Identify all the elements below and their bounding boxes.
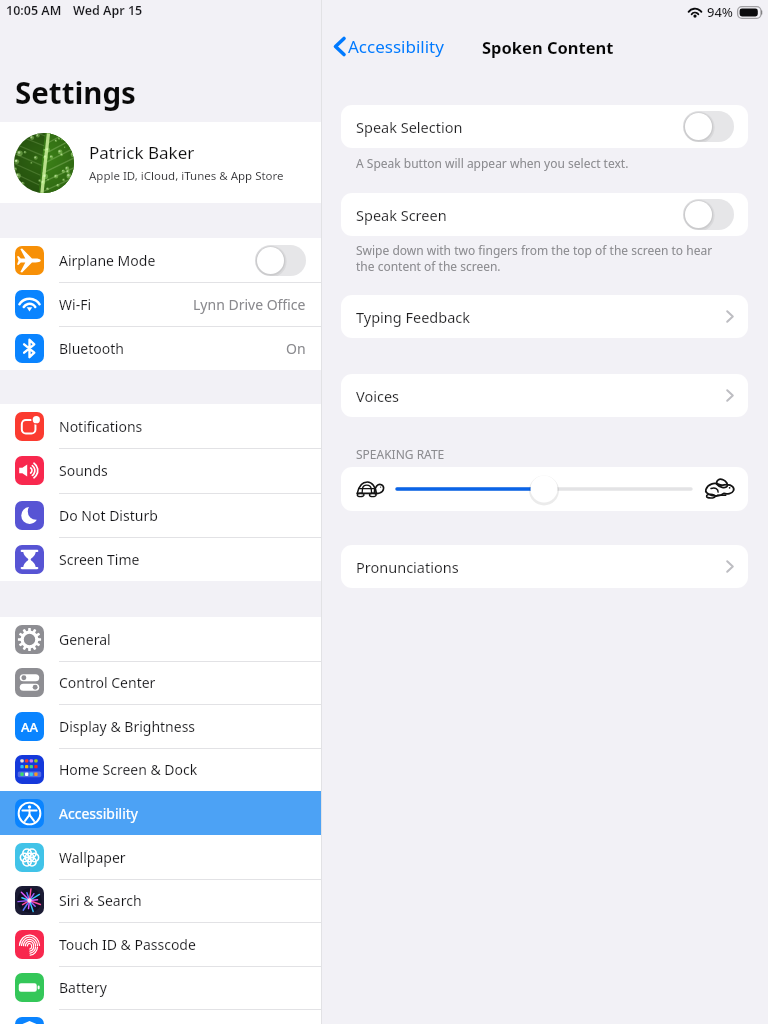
staticText: Siri & Search [59,891,142,910]
button[interactable]: Turn on [255,245,306,276]
staticText: On [286,339,306,358]
button[interactable]: Turn on [683,111,734,142]
button[interactable]: Patrick Baker [0,122,321,203]
other: More [726,560,734,573]
staticText: 94% [707,3,733,21]
button[interactable]: Airplane Mode [0,238,321,282]
staticText: Voices [356,386,400,406]
button[interactable]: Turn on [683,199,734,230]
button[interactable]: Home Screen & Dock [0,748,321,791]
staticText: Speak Selection [356,117,463,137]
staticText: A Speak button will appear when you sele… [356,155,629,171]
button[interactable]: Voices [341,374,748,417]
staticText: Airplane Mode [59,251,156,270]
button[interactable]: Speak Screen [341,193,748,236]
button[interactable]: Sounds [0,448,321,493]
button[interactable]: Privacy [0,1009,321,1024]
staticText: Wed Apr 15 [73,2,143,19]
staticText: Patrick Baker [89,141,195,164]
staticText: Pronunciations [356,557,459,577]
staticText: Battery [59,978,107,997]
staticText: Home Screen & Dock [59,760,198,779]
button[interactable]: Screen Time [0,537,321,581]
staticText: Display & Brightness [59,717,196,736]
button[interactable]: Siri & Search [0,879,321,922]
staticText: General [59,630,111,649]
staticText: Spoken Content [482,36,614,58]
staticText: Swipe down with two fingers from the top… [356,242,713,274]
button[interactable]: AA [0,704,321,748]
staticText: Speak Screen [356,205,447,225]
staticText: Touch ID & Passcode [59,935,196,954]
button[interactable]: Wallpaper [0,835,321,879]
button[interactable]: Bluetooth [0,326,321,370]
button[interactable]: Control Center [0,661,321,704]
staticText: Bluetooth [59,339,124,358]
button[interactable]: Battery [0,966,321,1009]
button[interactable]: Wi-Fi [0,282,321,326]
button[interactable]: Typing Feedback [341,295,748,338]
staticText: Sounds [59,461,108,480]
staticText: AA [21,718,39,736]
button[interactable]: Touch ID & Passcode [0,922,321,966]
staticText: Wi-Fi [59,295,92,314]
staticText: Notifications [59,417,143,436]
button[interactable]: Accessibility [330,33,447,60]
staticText: Settings [15,72,136,112]
staticText: Do Not Disturb [59,506,158,525]
staticText: Lynn Drive Office [193,295,306,314]
staticText: Accessibility [348,35,444,58]
other: More [726,310,734,323]
staticText: 10:05 AM [6,2,62,19]
button[interactable]: Pronunciations [341,545,748,588]
button[interactable]: Speak Selection [341,105,748,148]
other: More [726,389,734,402]
staticText: Screen Time [59,550,140,569]
staticText: Control Center [59,673,156,692]
button[interactable]: Do Not Disturb [0,493,321,537]
button[interactable]: General [0,617,321,661]
staticText: Wallpaper [59,848,126,867]
staticText: Typing Feedback [356,307,471,327]
button[interactable]: Notifications [0,404,321,448]
staticText: Accessibility [59,804,138,823]
staticText: Apple ID, iCloud, iTunes & App Store [89,168,284,184]
staticText: SPEAKING RATE [356,446,445,462]
button[interactable]: Accessibility [0,791,321,835]
